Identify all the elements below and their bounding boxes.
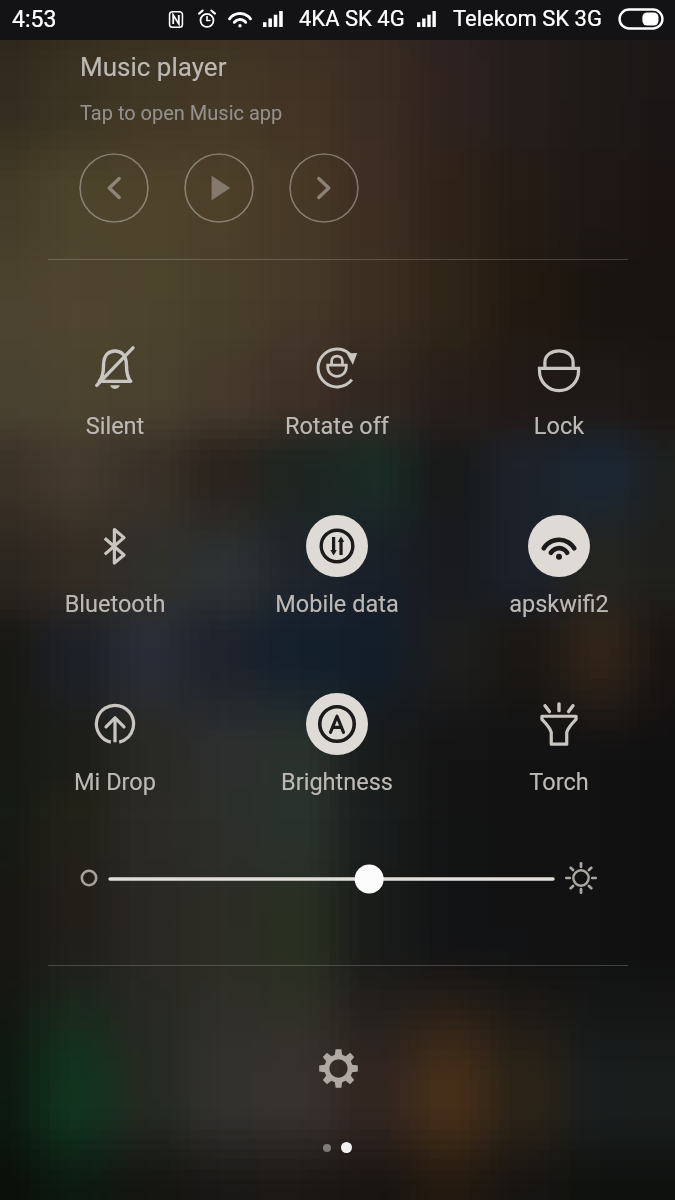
- button[interactable]: Next: [289, 153, 359, 223]
- button[interactable]: Mi Drop: [45, 693, 185, 796]
- button[interactable]: Mobile data: [267, 515, 407, 618]
- staticText: Tap to open Music app: [80, 101, 283, 124]
- button[interactable]: Brightness level: [105, 856, 560, 901]
- staticText: Mi Drop: [45, 768, 185, 796]
- staticText: Silent: [45, 412, 185, 440]
- button[interactable]: Settings: [309, 1039, 367, 1097]
- button[interactable]: apskwifi2: [489, 515, 629, 618]
- staticText: Telekom SK 3G: [453, 6, 602, 32]
- button[interactable]: Silent: [45, 337, 185, 440]
- staticText: Bluetooth: [45, 590, 185, 618]
- button[interactable]: Lock: [489, 337, 629, 440]
- button[interactable]: Previous: [79, 153, 149, 223]
- staticText: Mobile data: [267, 590, 407, 618]
- staticText: Music player: [80, 52, 227, 82]
- button[interactable]: Torch: [489, 693, 629, 796]
- button[interactable]: Maximum brightness: [565, 862, 597, 894]
- button[interactable]: Bluetooth: [45, 515, 185, 618]
- staticText: apskwifi2: [489, 590, 629, 618]
- staticText: 4KA SK 4G: [299, 6, 405, 32]
- button[interactable]: Minimum brightness: [73, 862, 105, 894]
- button[interactable]: Brightness: [267, 693, 407, 796]
- staticText: 4:53: [12, 6, 57, 33]
- staticText: Rotate off: [267, 412, 407, 440]
- button[interactable]: Rotate off: [267, 337, 407, 440]
- button[interactable]: Play: [184, 153, 254, 223]
- staticText: Lock: [489, 412, 629, 440]
- staticText: Torch: [489, 768, 629, 796]
- staticText: Brightness: [267, 768, 407, 796]
